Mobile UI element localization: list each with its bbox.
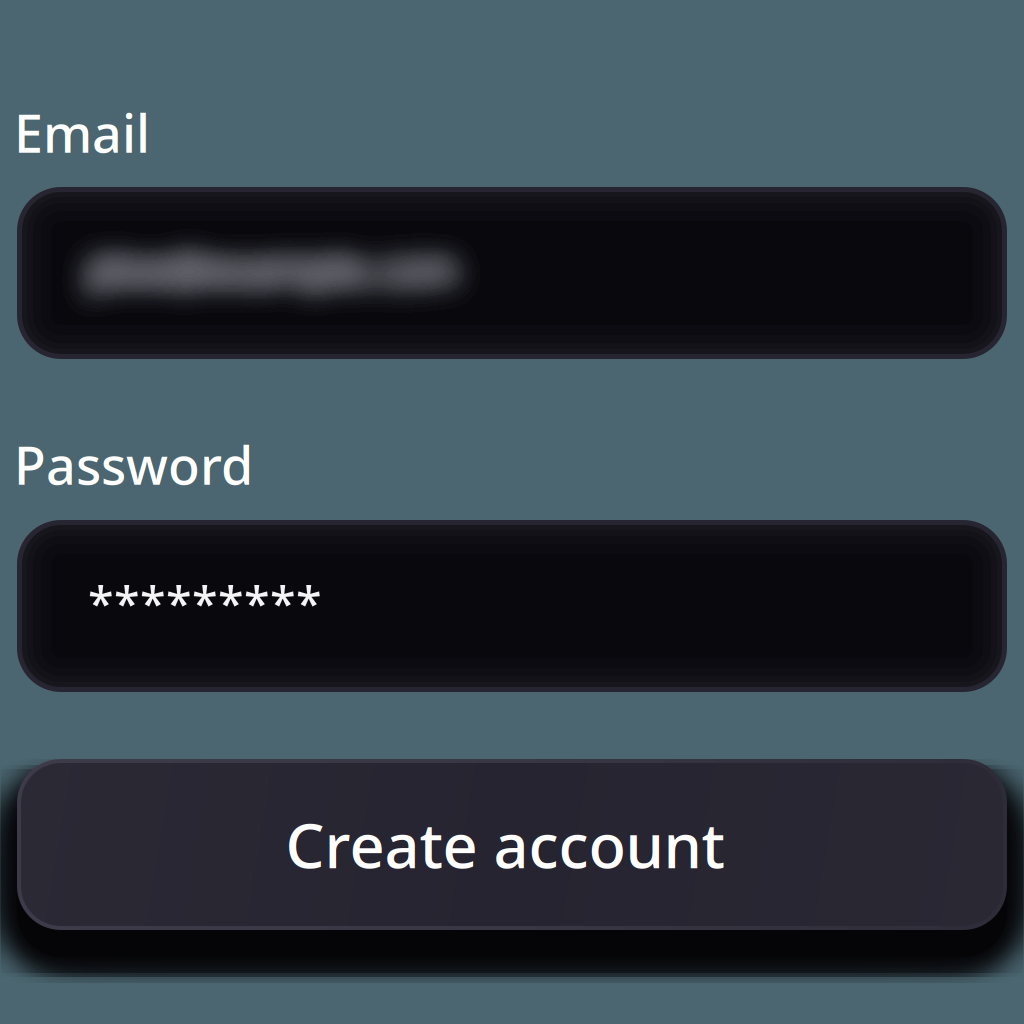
button[interactable]: Email address <box>17 187 1007 359</box>
staticText: ********* <box>88 572 322 634</box>
staticText: Create account <box>285 804 724 885</box>
button[interactable]: Create account <box>17 759 1007 930</box>
staticText: Password <box>14 430 253 499</box>
button[interactable]: Password <box>17 520 1007 692</box>
staticText: Email <box>14 98 150 167</box>
